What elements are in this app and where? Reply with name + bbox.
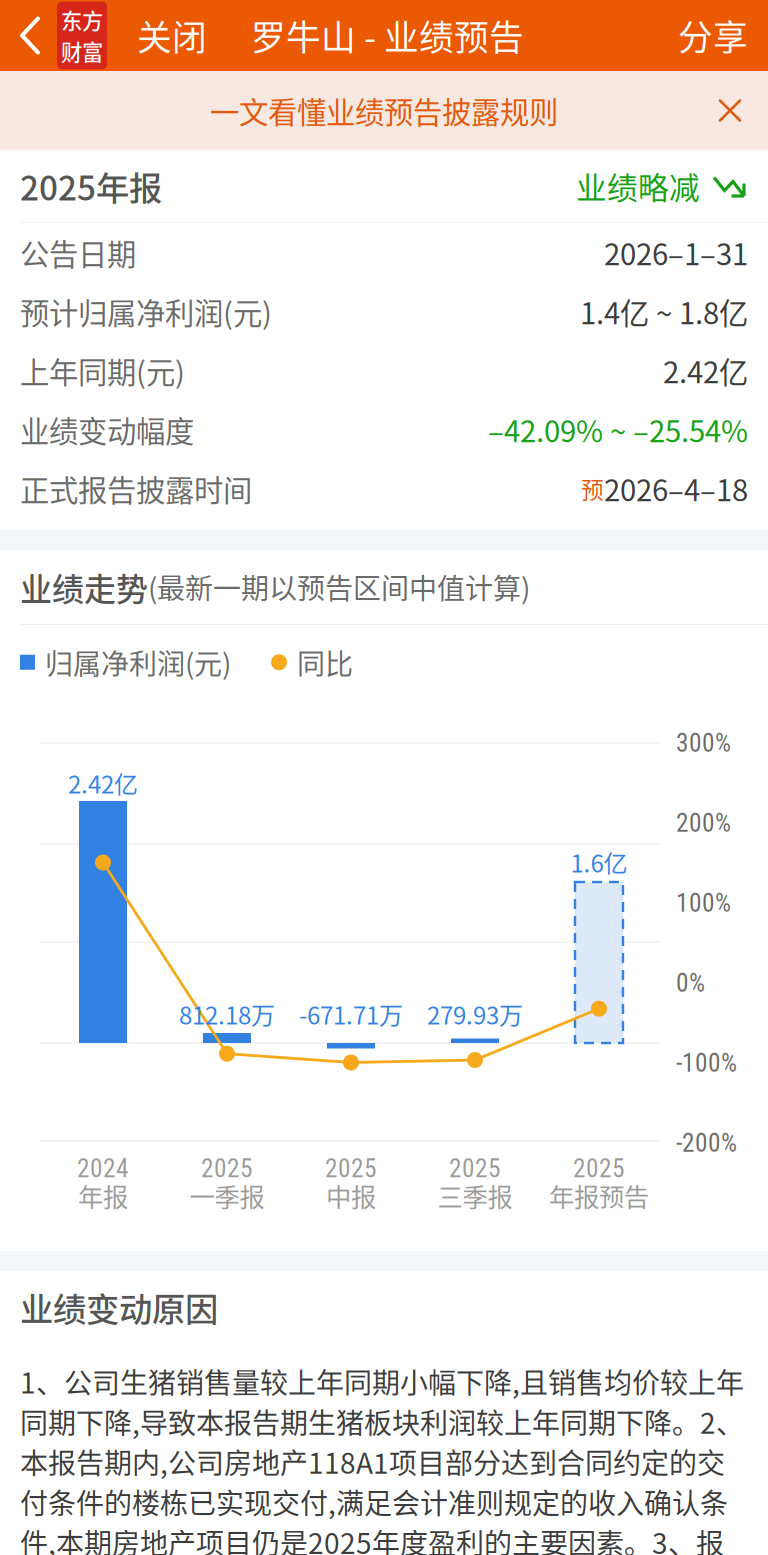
staticText: 200% [676,808,731,838]
staticText: 公告日期 [20,231,136,274]
staticText: 2.42亿 [68,766,138,800]
button[interactable]: 罗牛山 - 业绩预告 [229,0,532,71]
staticText: 正式报告披露时间 [20,467,252,510]
staticText: 2025年报 [20,162,162,210]
staticText: 1.6亿 [570,845,627,879]
button[interactable]: 一文看懂业绩预告披露规则 [0,71,768,150]
staticText: 年报 [78,1177,128,1214]
staticText: 预计归属净利润(元) [20,290,272,333]
staticText: 1、公司生猪销售量较上年同期小幅下降,且销售均价较上年同期下降,导致本报告期生猪… [20,1361,744,1555]
staticText: 一文看懂业绩预告披露规则 [210,89,558,132]
staticText: 2026–1–31 [604,231,748,274]
staticText: 0% [676,968,705,998]
staticText: -100% [676,1048,737,1078]
staticText: -200% [676,1128,737,1158]
staticText: 上年同期(元) [20,349,185,392]
staticText: 年报预告 [549,1177,649,1214]
staticText: –42.09% ~ –25.54% [488,408,748,451]
staticText: 三季报 [437,1177,512,1214]
staticText: (最新一期以预告区间中值计算) [148,567,530,607]
staticText: 同比 [297,642,353,682]
staticText: 东方 [61,5,103,35]
staticText: 2024 [77,1154,129,1183]
staticText: 业绩变动幅度 [20,408,194,451]
staticText: 一季报 [189,1177,264,1214]
staticText: 2025 [201,1154,253,1183]
staticText: 2025 [573,1154,625,1183]
staticText: 业绩变动原因 [20,1283,218,1331]
staticText: 100% [676,888,731,918]
staticText: 2.42亿 [663,349,748,392]
staticText: 1.4亿 ~ 1.8亿 [580,290,748,333]
staticText: 业绩略减 [576,164,700,208]
staticText: -671.71万 [299,997,403,1031]
staticText: 财富 [61,35,103,66]
staticText: 预 [581,472,604,505]
button[interactable]: 分享 [664,0,768,71]
staticText: 2026–4–18 [604,467,748,510]
staticText: 关闭 [137,10,207,61]
staticText: 812.18万 [179,997,275,1031]
staticText: 归属净利润(元) [45,642,231,682]
staticText: 2025 [325,1154,377,1183]
button[interactable]: Back [0,0,119,71]
staticText: 分享 [678,10,748,61]
staticText: 300% [676,728,731,758]
staticText: 279.93万 [427,997,523,1031]
staticText: 2025 [449,1154,501,1183]
staticText: 业绩走势 [20,564,148,610]
staticText: 中报 [326,1177,376,1214]
button[interactable]: 关闭 [119,0,229,71]
staticText: 罗牛山 - 业绩预告 [251,10,524,61]
